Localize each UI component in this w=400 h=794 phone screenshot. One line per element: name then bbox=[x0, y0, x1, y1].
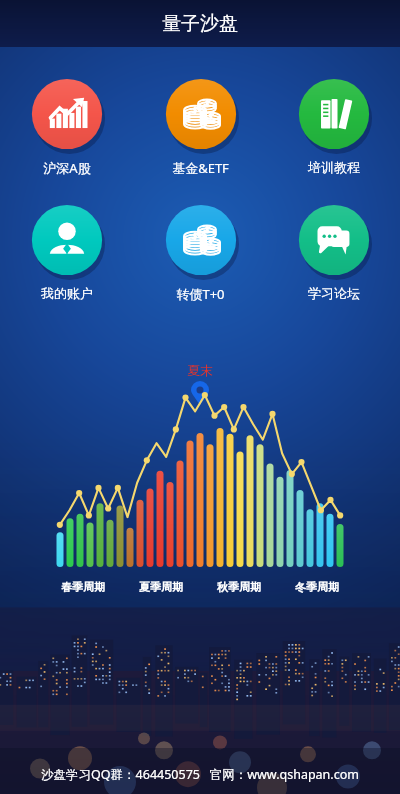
button[interactable]: 转债T+0 bbox=[134, 199, 267, 305]
staticText: 基金&ETF bbox=[172, 159, 229, 177]
staticText: 学习论坛 bbox=[308, 285, 360, 301]
button[interactable]: 沪深A股 bbox=[0, 73, 134, 179]
staticText: 培训教程 bbox=[308, 159, 360, 175]
staticText: 秋季周期 bbox=[217, 580, 261, 594]
staticText: 夏季周期 bbox=[139, 580, 183, 594]
button[interactable]: 学习论坛 bbox=[267, 199, 400, 303]
staticText: 冬季周期 bbox=[295, 580, 339, 594]
staticText: 夏末 bbox=[187, 362, 213, 378]
staticText: 我的账户 bbox=[41, 285, 93, 301]
staticText: 春季周期 bbox=[61, 580, 105, 594]
staticText: 量子沙盘 bbox=[162, 12, 238, 36]
staticText: 沙盘学习QQ群：464450575 官网：www.qshapan.com bbox=[41, 766, 359, 783]
button[interactable]: 培训教程 bbox=[267, 73, 400, 177]
button[interactable]: 我的账户 bbox=[0, 199, 134, 303]
button[interactable]: 基金&ETF bbox=[134, 73, 267, 179]
staticText: 沪深A股 bbox=[43, 159, 91, 177]
staticText: 转债T+0 bbox=[176, 285, 225, 303]
